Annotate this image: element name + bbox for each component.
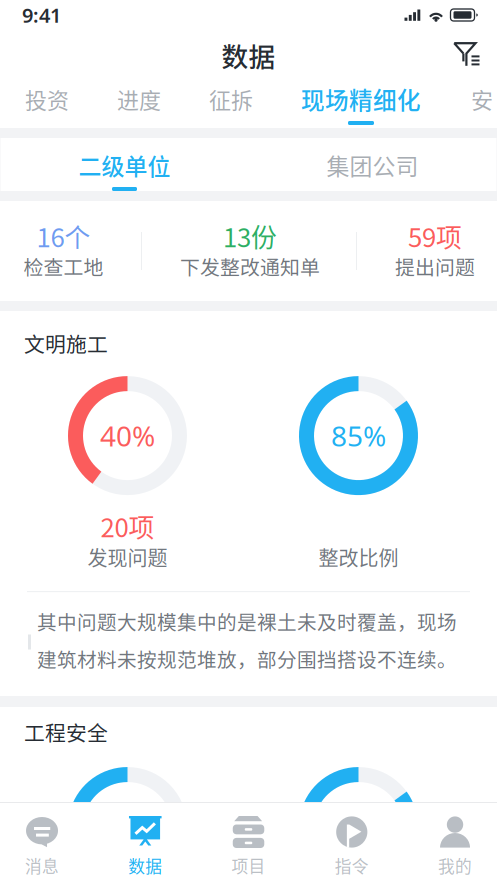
button[interactable]: 集团公司 xyxy=(248,138,496,191)
button[interactable]: 筛选 xyxy=(435,31,497,79)
staticText: 文明施工 xyxy=(24,328,108,358)
staticText: 项目 xyxy=(231,853,265,877)
staticText: 20项 xyxy=(100,507,154,545)
staticText: 检查工地 xyxy=(23,252,103,280)
staticText: 16个 xyxy=(36,217,90,255)
button[interactable]: 我的 xyxy=(403,803,497,883)
staticText: 我的 xyxy=(438,853,472,877)
staticText: 9:41 xyxy=(22,2,61,28)
button[interactable]: 安 xyxy=(469,75,495,133)
staticText: 数据 xyxy=(221,36,275,74)
button[interactable]: 项目 xyxy=(197,803,300,883)
staticText: 现场精细化 xyxy=(301,82,421,116)
staticText: 消息 xyxy=(25,853,59,877)
staticText: 进度 xyxy=(117,83,161,115)
button[interactable]: 投资 xyxy=(25,75,69,133)
staticText: 集团公司 xyxy=(326,148,418,182)
staticText: 85% xyxy=(331,417,386,454)
button[interactable]: 消息 xyxy=(0,803,94,883)
staticText: 59项 xyxy=(408,217,462,255)
staticText: 提出问题 xyxy=(395,252,475,280)
staticText: 征拆 xyxy=(209,83,253,115)
button[interactable]: 二级单位 xyxy=(0,138,248,191)
staticText: 二级单位 xyxy=(78,148,170,182)
staticText: 工程安全 xyxy=(24,717,108,747)
button[interactable]: 指令 xyxy=(300,803,403,883)
staticText: 整改比例 xyxy=(318,543,398,572)
button[interactable]: 数据 xyxy=(94,803,197,883)
staticText: 下发整改通知单 xyxy=(180,252,320,280)
button[interactable]: 进度 xyxy=(117,75,161,133)
staticText: 40% xyxy=(100,417,155,454)
staticText: 其中问题大规模集中的是裸土未及时覆盖，现场建筑材料未按规范堆放，部分围挡搭设不连… xyxy=(37,607,457,673)
staticText: 投资 xyxy=(25,83,69,115)
button[interactable]: 征拆 xyxy=(209,75,253,133)
staticText: 发现问题 xyxy=(87,543,167,572)
staticText: 13份 xyxy=(223,217,277,255)
staticText: 指令 xyxy=(335,853,369,877)
button[interactable]: 现场精细化 xyxy=(301,75,421,133)
staticText: 数据 xyxy=(128,853,162,877)
staticText: 安 xyxy=(471,83,493,115)
